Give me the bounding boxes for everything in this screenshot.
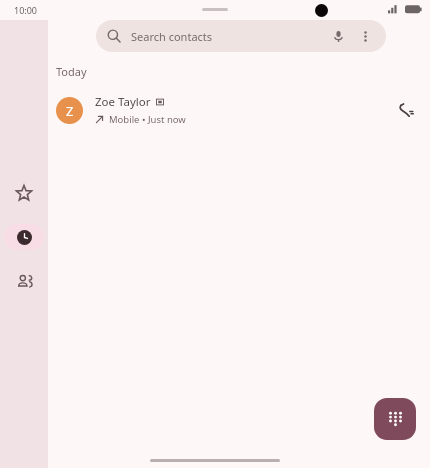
staticText: Z <box>66 102 74 120</box>
staticText: 10:00 <box>14 4 38 16</box>
button[interactable]: Favorites <box>4 180 44 206</box>
button[interactable]: Contacts <box>4 268 44 294</box>
button[interactable]: Voice search <box>327 25 349 47</box>
button[interactable]: Recents <box>4 224 44 250</box>
staticText: Search contacts <box>131 29 213 44</box>
button[interactable]: Search contacts <box>96 20 386 52</box>
button[interactable]: Z <box>48 89 430 131</box>
staticText: Zoe Taylor <box>95 94 151 110</box>
button[interactable]: Call Zoe Taylor <box>392 96 420 124</box>
button[interactable]: More options <box>355 26 375 46</box>
staticText: Today <box>56 64 87 79</box>
button[interactable]: Dialpad <box>374 398 416 440</box>
staticText: Mobile • Just now <box>109 113 186 126</box>
